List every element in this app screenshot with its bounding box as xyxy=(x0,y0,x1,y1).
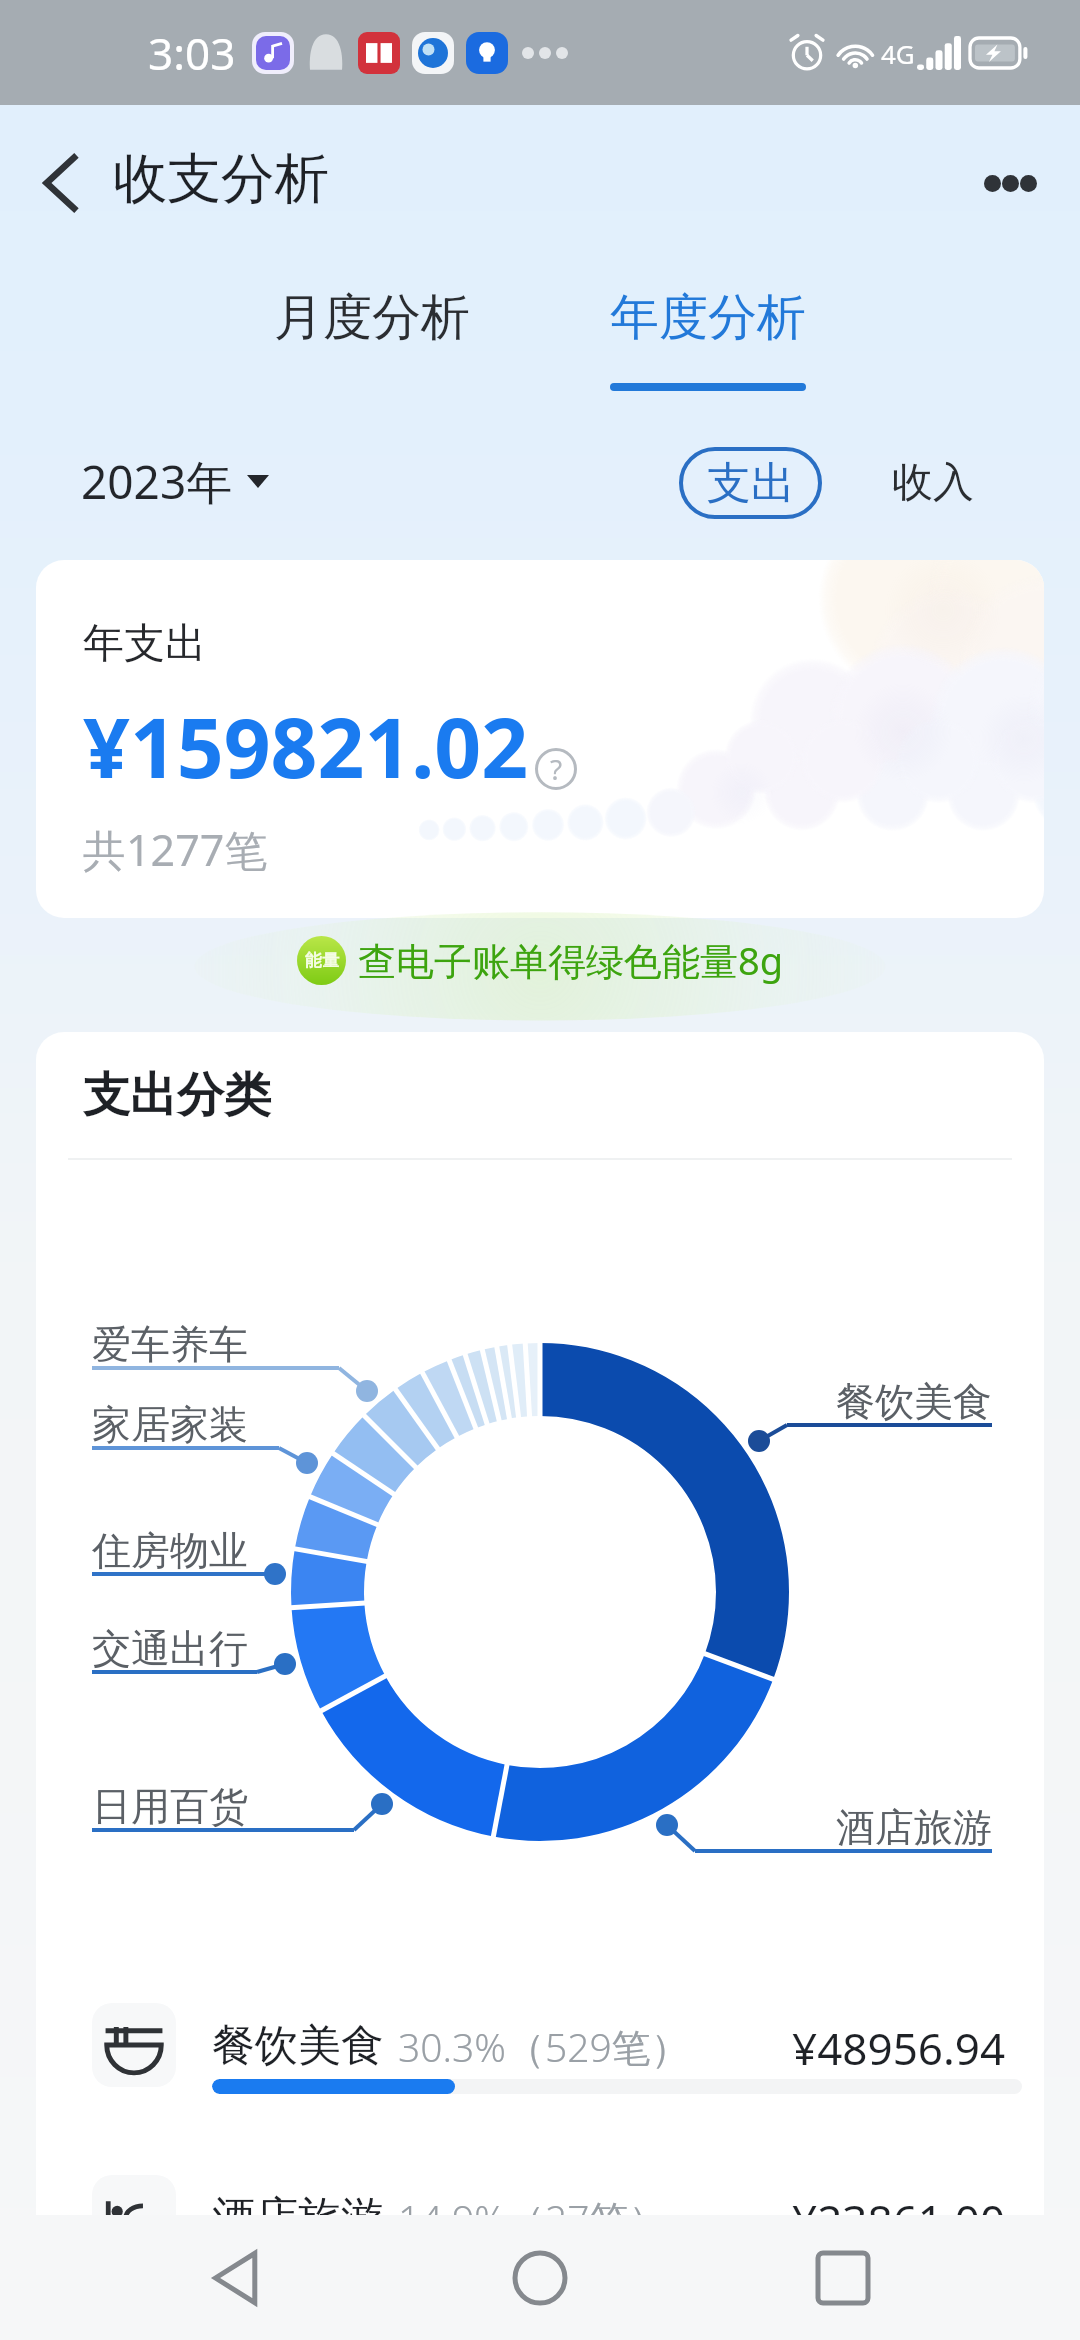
staticText: ¥23861.00 xyxy=(792,2190,1006,2250)
staticText: （529笔） xyxy=(506,2020,690,2073)
button[interactable]: 酒店旅游 xyxy=(836,1803,992,1852)
button[interactable]: 年度分析 xyxy=(540,260,876,410)
button[interactable]: 交通出行 xyxy=(92,1624,248,1673)
staticText: 查电子账单得绿色能量8g xyxy=(358,934,784,986)
button[interactable]: 收入 xyxy=(892,448,974,518)
button[interactable]: Recents xyxy=(778,2215,908,2340)
button[interactable]: Back xyxy=(10,133,110,233)
staticText: 酒店旅游 xyxy=(212,2191,384,2245)
button[interactable]: 爱车养车 xyxy=(92,1320,248,1369)
staticText: 餐饮美食 xyxy=(212,2019,384,2073)
staticText: 14.9% xyxy=(398,2192,506,2245)
staticText: ¥159821.02 xyxy=(83,690,529,802)
button[interactable]: Home xyxy=(475,2215,605,2340)
button[interactable]: Help xyxy=(535,748,577,790)
button[interactable]: 日用百货 xyxy=(92,1782,248,1831)
button[interactable]: 能量 xyxy=(297,934,784,986)
staticText: 支出分类 xyxy=(83,1066,271,1125)
button[interactable]: 支出 xyxy=(681,449,820,517)
staticText: 支出 xyxy=(707,456,795,511)
staticText: 30.3% xyxy=(398,2020,506,2073)
button[interactable]: 餐饮美食 xyxy=(836,1377,992,1426)
staticText: （27笔） xyxy=(506,2192,668,2245)
button[interactable]: 住房物业 xyxy=(92,1526,248,1575)
button[interactable]: 酒店旅游 xyxy=(36,2142,1044,2292)
staticText: 年度分析 xyxy=(610,287,806,349)
staticText: 4G xyxy=(881,36,915,71)
button[interactable]: 年支出 xyxy=(36,560,1044,918)
staticText: 收入 xyxy=(892,457,974,509)
staticText: ¥48956.94 xyxy=(792,2018,1006,2078)
staticText: 共1277笔 xyxy=(83,820,268,879)
staticText: 月度分析 xyxy=(274,287,470,349)
staticText: ? xyxy=(550,750,563,788)
button[interactable]: Back xyxy=(173,2215,303,2340)
staticText: 3:03 xyxy=(148,23,236,83)
staticText: 能量 xyxy=(305,950,339,971)
staticText: 收支分析 xyxy=(113,145,329,213)
button[interactable]: 餐饮美食 xyxy=(36,1970,1044,2120)
staticText: 2023年 xyxy=(81,450,233,513)
staticText: 年支出 xyxy=(83,618,206,670)
button[interactable]: 2023年 xyxy=(81,450,269,513)
button[interactable]: 家居家装 xyxy=(92,1400,248,1449)
button[interactable]: 月度分析 xyxy=(204,260,540,410)
button[interactable]: More options xyxy=(955,128,1065,238)
